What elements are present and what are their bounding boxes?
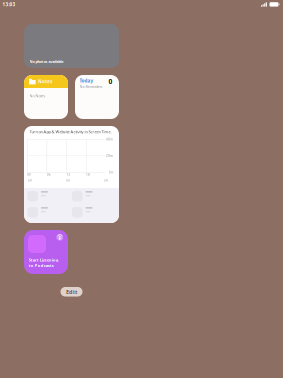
staticText: No Reminders [79,84,102,89]
staticText: Edit [66,288,77,295]
staticText: 0m [103,178,108,182]
staticText: to Podcasts [29,263,54,268]
button[interactable]: Notes widget [24,75,68,119]
staticText: 12 [66,172,70,176]
staticText: 40m [106,137,113,141]
staticText: 13:03 [2,2,15,7]
button[interactable]: Screen Time widget [24,126,119,223]
button[interactable]: Podcasts widget [24,230,68,274]
staticText: 06 [47,172,51,176]
staticText: No Notes [29,93,45,98]
staticText: 20m [106,154,113,158]
staticText: 00 [27,172,31,176]
staticText: Today [79,78,93,84]
button[interactable]: Reminders Today widget [75,75,119,119]
staticText: 0m [27,178,32,182]
staticText: 18 [86,172,90,176]
staticText: No photos available [29,59,63,64]
staticText: Start Listening [29,257,59,262]
staticText: Notes [38,79,52,84]
button[interactable]: Photos widget [24,24,119,68]
button[interactable]: Edit [60,287,82,296]
staticText: 0 [108,77,112,86]
staticText: 0m [65,178,70,182]
staticText: 0m [108,170,113,174]
staticText: Turn on App & Website Activity in Screen… [29,129,111,134]
